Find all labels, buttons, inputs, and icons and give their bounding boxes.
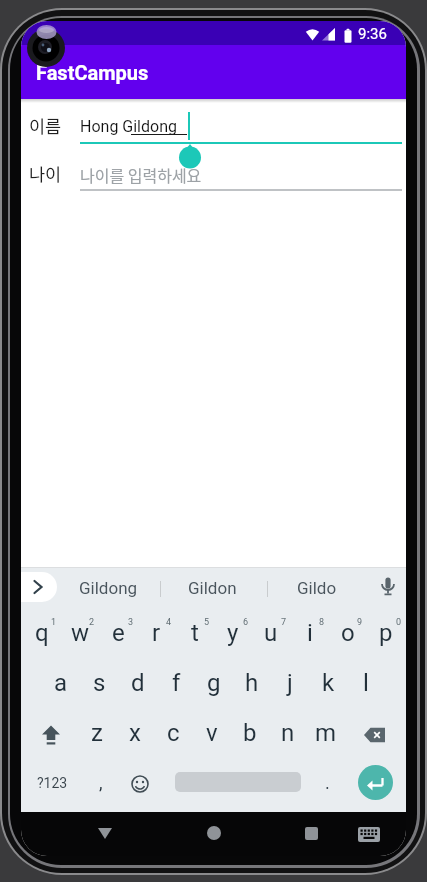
button[interactable]: t <box>176 612 214 654</box>
staticText: w <box>71 619 90 647</box>
button[interactable]: n <box>269 712 307 754</box>
staticText: 2 <box>89 617 95 628</box>
staticText: r <box>152 619 161 647</box>
staticText: s <box>93 669 106 697</box>
staticText: 9:36 <box>358 25 387 41</box>
staticText: . <box>325 772 330 793</box>
button[interactable]: u <box>252 612 290 654</box>
button[interactable]: , <box>87 769 115 795</box>
staticText: v <box>206 719 218 747</box>
button[interactable]: Gildon <box>177 577 247 599</box>
staticText: Gildo <box>297 578 337 598</box>
button[interactable]: z <box>78 712 116 754</box>
staticText: 1 <box>51 617 57 628</box>
staticText: 9 <box>357 617 363 628</box>
staticText: n <box>281 719 295 747</box>
staticText: g <box>207 669 221 697</box>
staticText: y <box>227 619 239 647</box>
button[interactable] <box>358 765 393 800</box>
button[interactable]: p <box>367 612 405 654</box>
staticText: d <box>131 669 145 697</box>
staticText: 4 <box>166 617 172 628</box>
button[interactable]: m <box>307 712 345 754</box>
staticText: j <box>287 669 293 697</box>
staticText: FastCampus <box>36 61 149 84</box>
staticText: 8 <box>319 617 325 628</box>
staticText: 나이를 입력하세요 <box>80 163 202 186</box>
staticText: a <box>54 669 68 697</box>
staticText: 이름 <box>29 113 62 138</box>
button[interactable] <box>305 827 318 840</box>
staticText: ?123 <box>37 775 68 791</box>
button[interactable]: w <box>61 612 99 654</box>
button[interactable] <box>358 827 380 842</box>
button[interactable]: . <box>315 769 339 795</box>
button[interactable]: a <box>42 662 80 704</box>
button[interactable] <box>207 826 221 840</box>
button[interactable]: g <box>195 662 233 704</box>
staticText: l <box>363 669 369 697</box>
button[interactable]: j <box>271 662 309 704</box>
staticText: 5 <box>204 617 210 628</box>
staticText: b <box>243 719 257 747</box>
staticText: u <box>264 619 278 647</box>
button[interactable] <box>97 827 113 840</box>
button[interactable]: x <box>116 712 154 754</box>
staticText: , <box>99 772 103 793</box>
staticText: c <box>167 719 180 747</box>
button[interactable] <box>380 577 396 597</box>
button[interactable]: k <box>309 662 347 704</box>
staticText: 나이 <box>29 161 62 186</box>
button[interactable]: ?123 <box>31 772 73 794</box>
staticText: z <box>91 719 103 747</box>
staticText: m <box>315 719 337 747</box>
staticText: 3 <box>128 617 134 628</box>
button[interactable] <box>39 723 63 747</box>
button[interactable]: h <box>233 662 271 704</box>
button[interactable]: d <box>119 662 157 704</box>
staticText: q <box>35 619 49 647</box>
button[interactable]: Gildo <box>282 577 352 599</box>
button[interactable] <box>21 572 57 602</box>
button[interactable]: o <box>329 612 367 654</box>
button[interactable]: y <box>214 612 252 654</box>
staticText: x <box>129 719 141 747</box>
staticText: 7 <box>281 617 287 628</box>
staticText: k <box>322 669 335 697</box>
staticText: Hong Gildong <box>80 117 177 136</box>
staticText: e <box>112 619 125 647</box>
staticText: f <box>172 669 181 697</box>
staticText: h <box>245 669 259 697</box>
staticText: 0 <box>396 617 402 628</box>
staticText: 6 <box>243 617 249 628</box>
button[interactable]: l <box>347 662 385 704</box>
button[interactable] <box>131 775 149 793</box>
staticText: Gildong <box>79 578 138 598</box>
staticText: t <box>191 619 199 647</box>
button[interactable]: e <box>99 612 137 654</box>
button[interactable] <box>364 727 386 743</box>
staticText: o <box>341 619 355 647</box>
button[interactable]: r <box>137 612 175 654</box>
button[interactable]: Gildong <box>73 577 143 599</box>
button[interactable]: v <box>193 712 231 754</box>
button[interactable]: f <box>157 662 195 704</box>
button[interactable]: b <box>231 712 269 754</box>
staticText: Gildon <box>188 578 237 598</box>
button[interactable]: s <box>80 662 118 704</box>
button[interactable]: c <box>154 712 192 754</box>
button[interactable]: i <box>291 612 329 654</box>
staticText: i <box>307 619 313 647</box>
button[interactable]: q <box>23 612 61 654</box>
staticText: p <box>379 619 393 647</box>
